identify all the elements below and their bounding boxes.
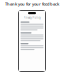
staticText: Privacy Policy: [23, 16, 40, 19]
staticText: Thank you for your feedback: [5, 1, 59, 7]
